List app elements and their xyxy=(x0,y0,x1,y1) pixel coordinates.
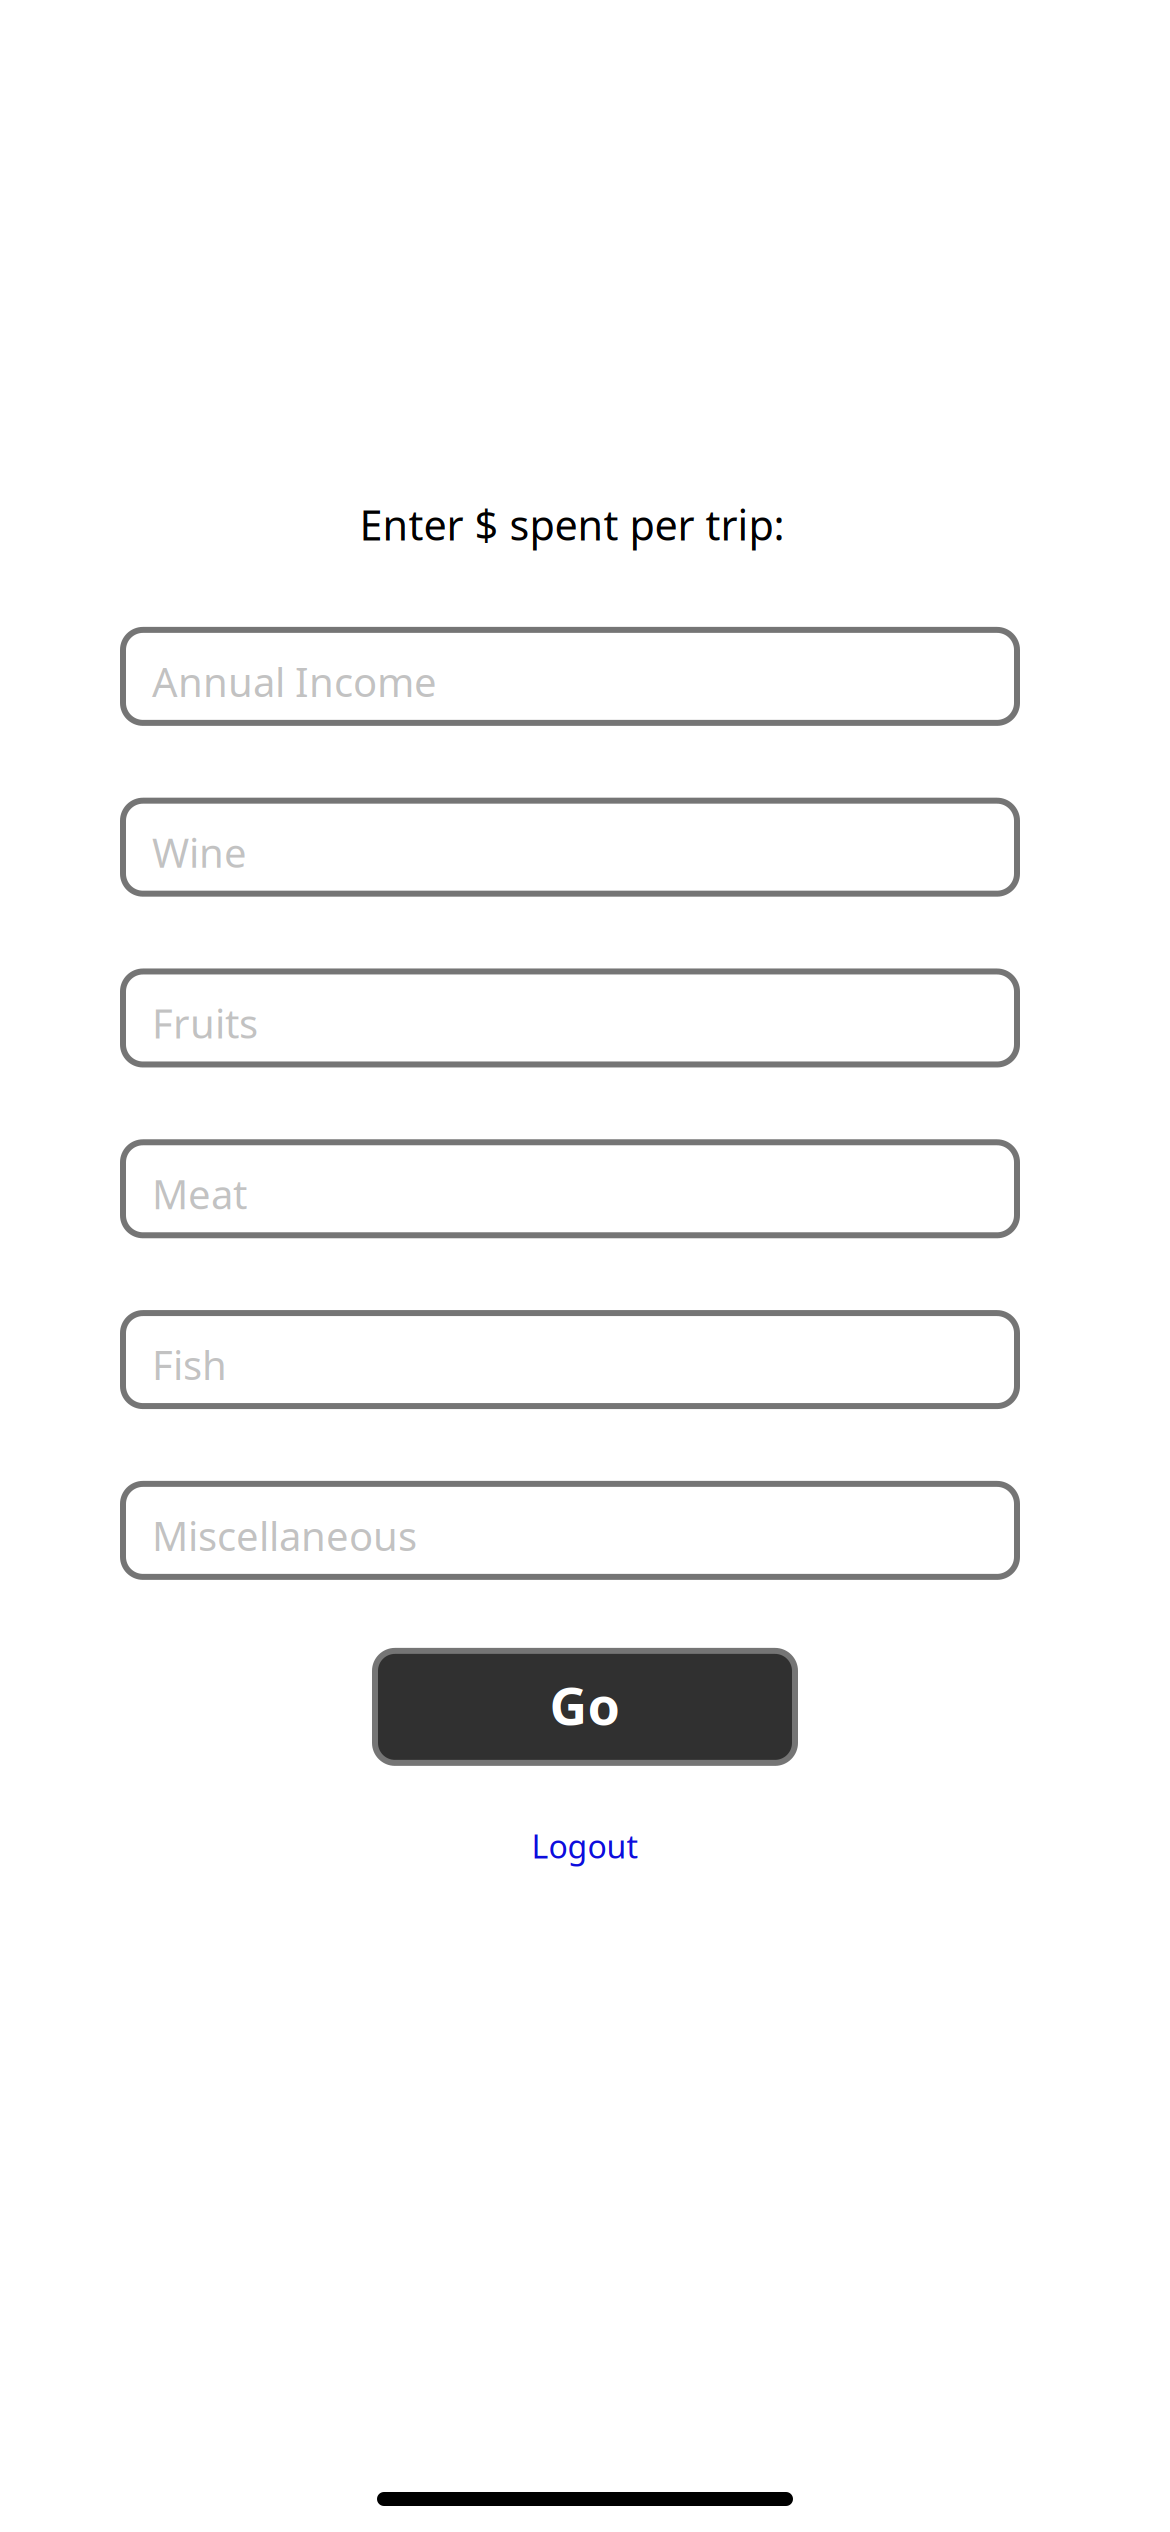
button[interactable]: Fish xyxy=(123,1313,1017,1406)
staticText: Enter $ spent per trip: xyxy=(359,497,784,552)
button[interactable]: Wine xyxy=(123,801,1017,894)
staticText: Fruits xyxy=(152,996,258,1049)
staticText: Annual Income xyxy=(152,655,437,708)
button[interactable]: Meat xyxy=(123,1142,1017,1235)
staticText: Fish xyxy=(152,1338,227,1391)
staticText: Meat xyxy=(152,1167,247,1220)
button[interactable]: Annual Income xyxy=(123,630,1017,723)
button[interactable]: Logout xyxy=(531,1825,638,1867)
button[interactable]: Go xyxy=(375,1651,795,1763)
button[interactable]: Miscellaneous xyxy=(123,1484,1017,1577)
staticText: Wine xyxy=(152,826,247,879)
staticText: Miscellaneous xyxy=(152,1509,417,1562)
staticText: Logout xyxy=(531,1825,638,1867)
button[interactable]: Fruits xyxy=(123,971,1017,1064)
staticText: Go xyxy=(549,1670,620,1739)
